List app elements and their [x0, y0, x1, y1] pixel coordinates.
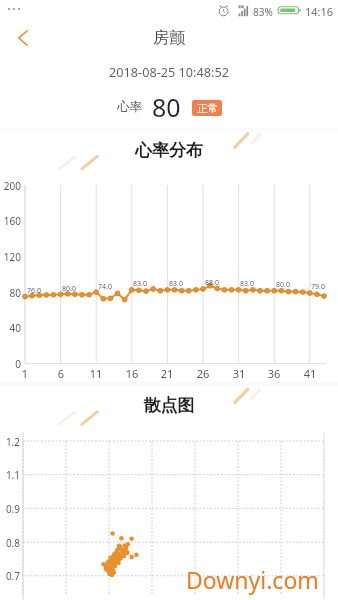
staticText: 房颤 [0, 28, 338, 48]
staticText: 心率分布 [0, 140, 338, 161]
staticText: 1.2 [0, 435, 20, 449]
staticText: 83.0 [240, 279, 254, 289]
staticText: 6 [51, 366, 71, 381]
staticText: 120 [0, 250, 21, 264]
staticText: 26 [193, 366, 213, 381]
staticText: 83% [253, 5, 273, 19]
staticText: 1.1 [0, 468, 20, 482]
staticText: 正常 [197, 102, 218, 115]
staticText: 散点图 [0, 395, 338, 416]
staticText: 80.0 [62, 284, 76, 294]
button[interactable]: Back [8, 23, 38, 53]
staticText: 41 [300, 366, 320, 381]
staticText: 31 [229, 366, 249, 381]
button[interactable]: 正常 [192, 100, 222, 116]
staticText: 16 [122, 366, 142, 381]
staticText: 88.0 [205, 278, 219, 288]
staticText: 36 [264, 366, 284, 381]
staticText: 83.0 [169, 279, 183, 289]
staticText: 0.9 [0, 502, 20, 516]
staticText: 76.0 [27, 286, 41, 296]
staticText: 83.0 [133, 279, 147, 289]
staticText: 0.7 [0, 569, 20, 583]
staticText: 74.0 [98, 282, 112, 292]
staticText: Downyi.com [186, 564, 319, 595]
staticText: 1 [15, 366, 35, 381]
staticText: 160 [0, 214, 21, 228]
staticText: 80.0 [276, 280, 290, 290]
staticText: 2018-08-25 10:48:52 [0, 63, 338, 80]
staticText: 80 [152, 90, 181, 124]
staticText: 0.8 [0, 536, 20, 550]
staticText: 80 [0, 286, 21, 300]
staticText: 21 [157, 366, 177, 381]
staticText: 0 [0, 357, 21, 371]
staticText: 200 [0, 179, 21, 193]
staticText: 14:16 [305, 4, 334, 19]
staticText: 79.0 [311, 282, 325, 292]
staticText: 40 [0, 321, 21, 335]
staticText: 11 [86, 366, 106, 381]
staticText: 心率 [117, 99, 142, 115]
